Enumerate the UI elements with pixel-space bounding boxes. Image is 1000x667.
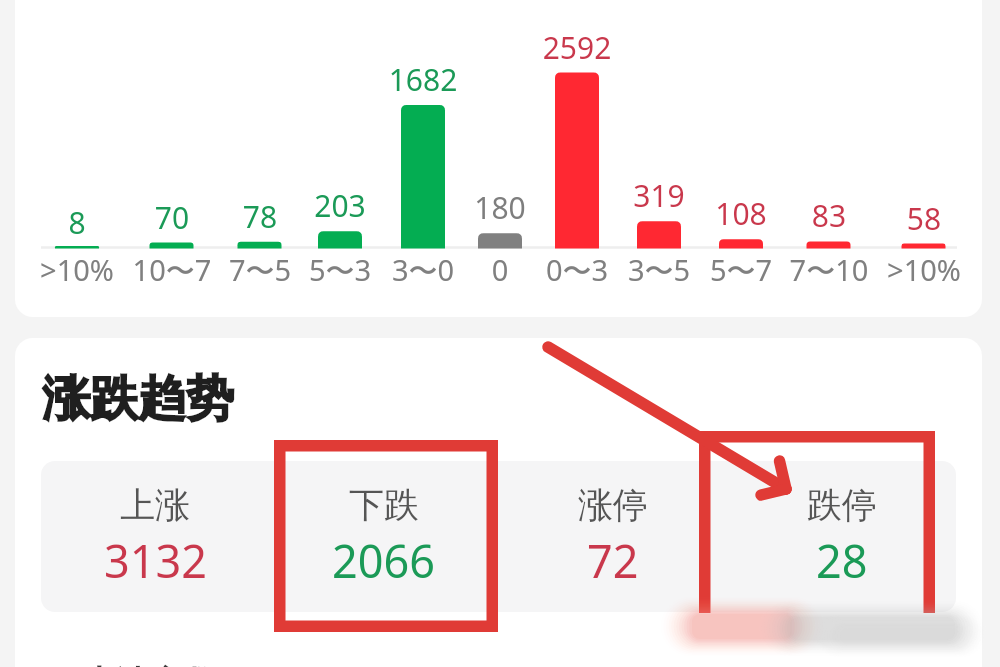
- button[interactable]: 下跌: [269, 461, 498, 612]
- button[interactable]: 上涨: [41, 461, 269, 612]
- staticText: 70: [102, 197, 242, 238]
- staticText: 58: [854, 198, 994, 239]
- staticText: 3〜0: [353, 250, 493, 290]
- button[interactable]: 涨停: [498, 461, 727, 612]
- staticText: 1682: [353, 59, 493, 100]
- staticText: 72: [587, 530, 639, 591]
- staticText: 319: [589, 175, 729, 216]
- staticText: 3132: [104, 530, 207, 591]
- staticText: 203: [270, 185, 410, 226]
- staticText: 上涨: [120, 483, 190, 527]
- staticText: >10%: [854, 250, 994, 289]
- staticText: 上涨家数: [82, 662, 218, 667]
- staticText: 涨跌趋势: [42, 369, 234, 429]
- staticText: 2066: [332, 530, 435, 591]
- staticText: 0〜3: [507, 250, 647, 290]
- button[interactable]: [15, 338, 982, 667]
- button[interactable]: 跌停: [727, 461, 956, 612]
- staticText: 7〜5: [190, 250, 330, 290]
- staticText: 83: [759, 195, 899, 236]
- staticText: 8: [7, 202, 147, 243]
- staticText: 78: [190, 196, 330, 237]
- staticText: 5〜7: [671, 250, 811, 290]
- staticText: 下跌: [349, 483, 419, 527]
- staticText: 3〜5: [589, 250, 729, 290]
- staticText: 7〜10: [759, 250, 899, 290]
- staticText: 2592: [507, 27, 647, 68]
- staticText: >10%: [7, 250, 147, 289]
- staticText: 28: [816, 530, 868, 591]
- staticText: 10〜7: [102, 250, 242, 290]
- staticText: 涨停: [578, 483, 648, 527]
- staticText: 108: [671, 193, 811, 234]
- staticText: 5〜3: [270, 250, 410, 290]
- staticText: 0: [430, 250, 570, 289]
- staticText: 跌停: [807, 483, 877, 527]
- button[interactable]: 涨跌分布 distribution chart: [15, 0, 982, 317]
- staticText: 180: [430, 187, 570, 228]
